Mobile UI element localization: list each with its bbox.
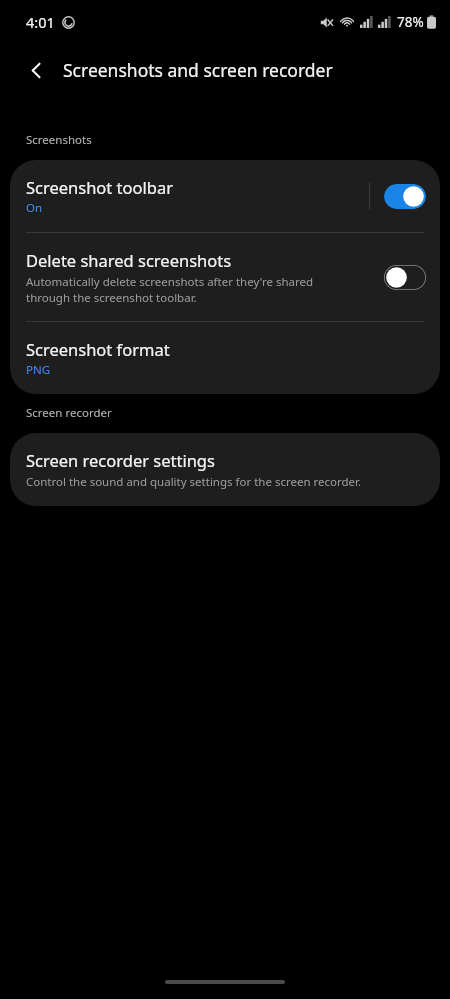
staticText: 78% <box>397 13 424 31</box>
staticText: PNG <box>26 362 51 378</box>
staticText: On <box>26 200 43 216</box>
staticText: Delete shared screenshots <box>26 249 232 271</box>
button[interactable]: Screenshot format <box>10 322 440 394</box>
button[interactable]: Screen recorder settings <box>10 433 440 506</box>
button[interactable]: Delete shared screenshots <box>10 233 440 321</box>
staticText: Screenshots and screen recorder <box>63 58 333 82</box>
staticText: Screenshots <box>26 132 92 148</box>
staticText: Screen recorder <box>26 405 112 421</box>
button[interactable]: Back <box>16 50 56 90</box>
button[interactable]: Toggle on <box>384 184 426 209</box>
staticText: Control the sound and quality settings f… <box>26 474 362 490</box>
staticText: Screenshot format <box>26 338 170 360</box>
button[interactable]: Toggle off <box>384 265 426 290</box>
staticText: Screenshot toolbar <box>26 176 173 198</box>
staticText: Screen recorder settings <box>26 449 215 471</box>
staticText: Automatically delete screenshots after t… <box>26 274 359 305</box>
button[interactable]: Screenshot toolbar <box>10 160 440 232</box>
staticText: 4:01 <box>26 12 55 32</box>
